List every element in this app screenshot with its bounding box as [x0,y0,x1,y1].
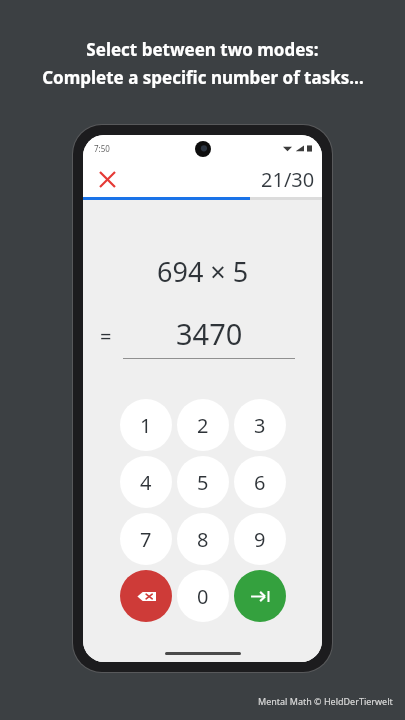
button[interactable]: 7 [120,513,172,565]
button[interactable]: 3 [234,399,286,451]
staticText: 3 [254,412,266,439]
button[interactable]: 5 [177,456,229,508]
staticText: = [100,323,112,350]
staticText: 21/30 [261,166,315,193]
button[interactable]: Submit [234,570,286,622]
button[interactable]: 1 [120,399,172,451]
button[interactable]: Close [92,164,122,194]
button[interactable]: 8 [177,513,229,565]
staticText: Select between two modes: [86,38,319,61]
staticText: Mental Math © HeldDerTierwelt [258,695,393,707]
staticText: 4 [140,469,152,496]
button[interactable]: 2 [177,399,229,451]
staticText: Complete a specific number of tasks… [42,66,364,89]
staticText: 8 [197,526,209,553]
staticText: 1 [140,412,152,439]
staticText: 0 [197,583,209,610]
button[interactable]: 4 [120,456,172,508]
staticText: 5 [197,469,209,496]
staticText: 7 [140,526,152,553]
button[interactable]: 6 [234,456,286,508]
staticText: 9 [254,526,266,553]
staticText: 7:50 [94,143,110,154]
staticText: 2 [197,412,209,439]
button[interactable]: Backspace [120,570,172,622]
staticText: 694 × 5 [157,253,249,290]
staticText: 3470 [176,314,243,353]
button[interactable]: 9 [234,513,286,565]
button[interactable]: 0 [177,570,229,622]
staticText: 6 [254,469,266,496]
